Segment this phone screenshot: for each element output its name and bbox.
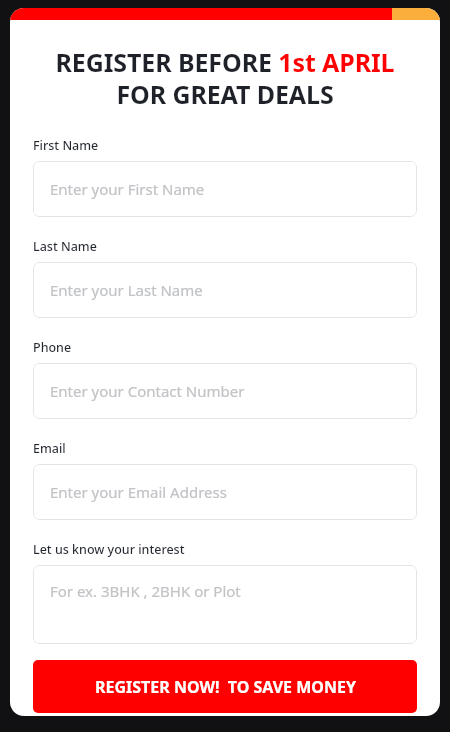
staticText: First Name [33,137,99,154]
staticText: Last Name [33,238,97,255]
staticText: Enter your Contact Number [50,381,245,401]
staticText: REGISTER BEFORE 1st APRIL FOR GREAT DEAL… [20,45,430,111]
button[interactable]: Email [33,464,417,520]
staticText: Phone [33,339,72,356]
staticText: For ex. 3BHK , 2BHK or Plot [50,581,241,601]
staticText: Enter your Last Name [50,280,203,300]
staticText: Let us know your interest [33,541,185,558]
button[interactable]: Let us know your interest [33,565,417,644]
staticText: Email [33,440,66,457]
button[interactable]: Last Name [33,262,417,318]
staticText: Enter your Email Address [50,482,227,502]
staticText: Enter your First Name [50,179,205,199]
button[interactable]: REGISTER NOW! TO SAVE MONEY [33,660,417,713]
button[interactable]: Phone [33,363,417,419]
staticText: REGISTER NOW! TO SAVE MONEY [95,676,356,698]
button[interactable]: First Name [33,161,417,217]
